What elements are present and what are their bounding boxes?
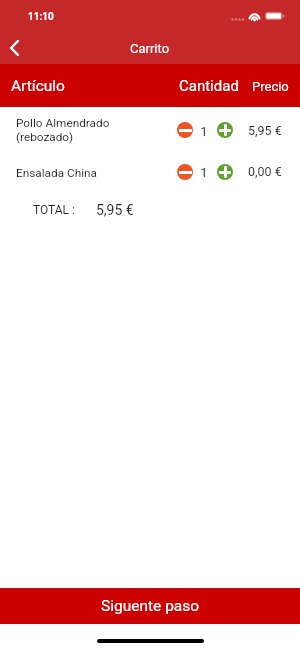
- staticText: Siguente paso: [101, 597, 200, 615]
- staticText: Artículo: [11, 77, 65, 95]
- button[interactable]: Siguente paso: [0, 588, 300, 624]
- staticText: TOTAL :: [33, 203, 75, 217]
- staticText: Ensalada China: [16, 166, 97, 180]
- button[interactable]: Back: [0, 32, 30, 63]
- button[interactable]: Increase quantity: [217, 164, 233, 180]
- staticText: Carrito: [130, 41, 170, 56]
- button[interactable]: Ensalada China: [0, 155, 300, 190]
- staticText: Precio: [252, 79, 289, 94]
- staticText: Cantidad: [179, 77, 239, 95]
- staticText: 1: [198, 124, 210, 139]
- staticText: Pollo Almendrado: [16, 116, 110, 130]
- button[interactable]: Decrease quantity: [177, 122, 193, 138]
- staticText: 5,95 €: [248, 123, 282, 138]
- staticText: 5,95 €: [96, 202, 134, 218]
- button[interactable]: Decrease quantity: [177, 164, 193, 180]
- staticText: 11:10: [28, 11, 54, 23]
- staticText: 0,00 €: [248, 164, 282, 179]
- button[interactable]: Pollo Almendrado: [0, 106, 300, 153]
- staticText: 1: [198, 165, 210, 180]
- button[interactable]: Increase quantity: [217, 122, 233, 138]
- staticText: (rebozado): [16, 130, 74, 144]
